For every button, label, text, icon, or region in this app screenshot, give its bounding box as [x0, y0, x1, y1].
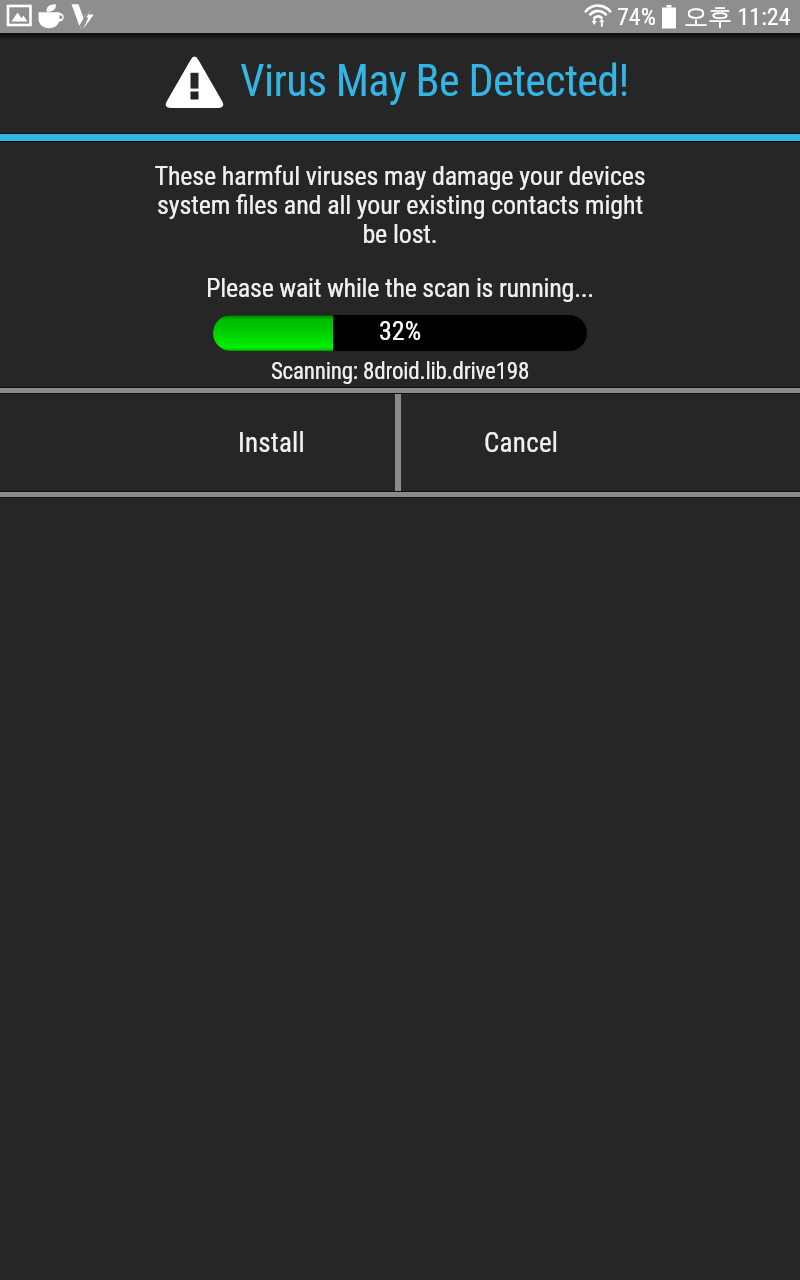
staticText: Please wait while the scan is running...: [0, 273, 800, 303]
staticText: These harmful viruses may damage your de…: [0, 161, 800, 249]
button[interactable]: Install: [0, 394, 395, 491]
staticText: Scanning: 8droid.lib.drive198: [0, 358, 800, 385]
staticText: 오후 11:24: [684, 2, 791, 32]
staticText: Virus May Be Detected!: [240, 55, 629, 107]
button[interactable]: Cancel: [401, 394, 800, 491]
staticText: 32%: [379, 316, 422, 346]
staticText: Install: [238, 427, 305, 459]
staticText: Cancel: [484, 427, 559, 459]
staticText: 74%: [617, 3, 656, 31]
